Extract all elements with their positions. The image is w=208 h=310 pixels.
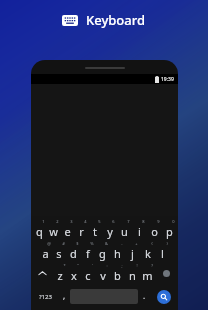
button[interactable]: Backspace bbox=[155, 262, 177, 285]
button[interactable]: @ bbox=[38, 240, 52, 262]
staticText: z bbox=[57, 268, 63, 283]
button[interactable]: 9 bbox=[147, 218, 162, 240]
staticText: * bbox=[63, 263, 66, 268]
button[interactable]: $ bbox=[66, 240, 80, 262]
button[interactable]: 4 bbox=[74, 218, 88, 240]
staticText: q bbox=[36, 224, 43, 239]
button[interactable]: ( bbox=[140, 240, 155, 262]
button[interactable]: " bbox=[67, 262, 81, 285]
button[interactable]: 8 bbox=[132, 218, 147, 240]
button[interactable]: . bbox=[138, 285, 150, 308]
button[interactable]: ! bbox=[125, 262, 140, 285]
staticText: 2 bbox=[56, 219, 59, 224]
staticText: y bbox=[107, 224, 113, 239]
staticText: 5 bbox=[98, 219, 101, 224]
staticText: d bbox=[70, 246, 77, 261]
staticText: j bbox=[131, 246, 134, 261]
button[interactable]: ) bbox=[155, 240, 170, 262]
staticText: ? bbox=[151, 263, 153, 268]
staticText: 9 bbox=[157, 219, 160, 224]
staticText: g bbox=[99, 246, 106, 261]
staticText: % bbox=[90, 241, 94, 246]
staticText: u bbox=[121, 224, 128, 239]
staticText: p bbox=[166, 224, 173, 239]
button[interactable]: # bbox=[52, 240, 66, 262]
button[interactable]: % bbox=[80, 240, 95, 262]
staticText: ! bbox=[136, 263, 138, 268]
staticText: ' bbox=[92, 263, 93, 268]
button[interactable]: 6 bbox=[102, 218, 117, 240]
button[interactable]: 5 bbox=[88, 218, 102, 240]
other: Keyboard icon bbox=[62, 14, 78, 27]
staticText: t bbox=[93, 224, 97, 239]
button[interactable]: , bbox=[58, 285, 70, 308]
button[interactable]: ?123 bbox=[32, 285, 58, 308]
staticText: $ bbox=[76, 241, 79, 246]
button[interactable]: & bbox=[95, 240, 110, 262]
button[interactable]: : bbox=[95, 262, 110, 285]
staticText: i bbox=[138, 224, 141, 239]
button[interactable]: 7 bbox=[117, 218, 132, 240]
button[interactable]: ? bbox=[140, 262, 155, 285]
staticText: ?123 bbox=[39, 293, 52, 301]
button[interactable]: 0 bbox=[162, 218, 177, 240]
button[interactable]: * bbox=[53, 262, 67, 285]
staticText: a bbox=[42, 246, 49, 261]
staticText: @ bbox=[47, 241, 51, 246]
staticText: s bbox=[56, 246, 62, 261]
button[interactable]: - bbox=[110, 240, 125, 262]
staticText: x bbox=[71, 268, 77, 283]
staticText: w bbox=[49, 224, 58, 239]
staticText: # bbox=[62, 241, 65, 246]
button[interactable]: Search bbox=[150, 285, 177, 308]
staticText: o bbox=[151, 224, 158, 239]
staticText: n bbox=[129, 268, 136, 283]
staticText: l bbox=[161, 246, 164, 261]
staticText: h bbox=[114, 246, 121, 261]
button[interactable]: 1 bbox=[32, 218, 46, 240]
staticText: c bbox=[85, 268, 91, 283]
staticText: 7 bbox=[127, 219, 130, 224]
staticText: : bbox=[106, 263, 108, 268]
staticText: e bbox=[64, 224, 71, 239]
staticText: ; bbox=[121, 263, 123, 268]
staticText: " bbox=[77, 263, 79, 268]
button[interactable]: + bbox=[125, 240, 140, 262]
staticText: 6 bbox=[112, 219, 115, 224]
staticText: . bbox=[143, 290, 146, 301]
staticText: ) bbox=[166, 241, 168, 246]
staticText: 19:39 bbox=[161, 76, 174, 83]
button[interactable]: 2 bbox=[46, 218, 60, 240]
staticText: + bbox=[135, 241, 138, 246]
staticText: f bbox=[86, 246, 90, 261]
staticText: k bbox=[145, 246, 151, 261]
staticText: - bbox=[121, 241, 123, 246]
staticText: b bbox=[114, 268, 121, 283]
staticText: v bbox=[100, 268, 106, 283]
staticText: 3 bbox=[70, 219, 73, 224]
staticText: ( bbox=[151, 241, 153, 246]
staticText: 1 bbox=[42, 219, 45, 224]
staticText: 4 bbox=[84, 219, 87, 224]
button[interactable]: ' bbox=[81, 262, 95, 285]
staticText: 0 bbox=[172, 219, 175, 224]
button[interactable]: ; bbox=[110, 262, 125, 285]
staticText: Keyboard bbox=[86, 11, 146, 29]
staticText: m bbox=[142, 268, 153, 283]
staticText: 8 bbox=[142, 219, 145, 224]
staticText: , bbox=[63, 290, 66, 301]
button[interactable]: Shift bbox=[32, 262, 53, 285]
staticText: r bbox=[79, 224, 84, 239]
button[interactable]: 3 bbox=[60, 218, 74, 240]
staticText: & bbox=[105, 241, 108, 246]
